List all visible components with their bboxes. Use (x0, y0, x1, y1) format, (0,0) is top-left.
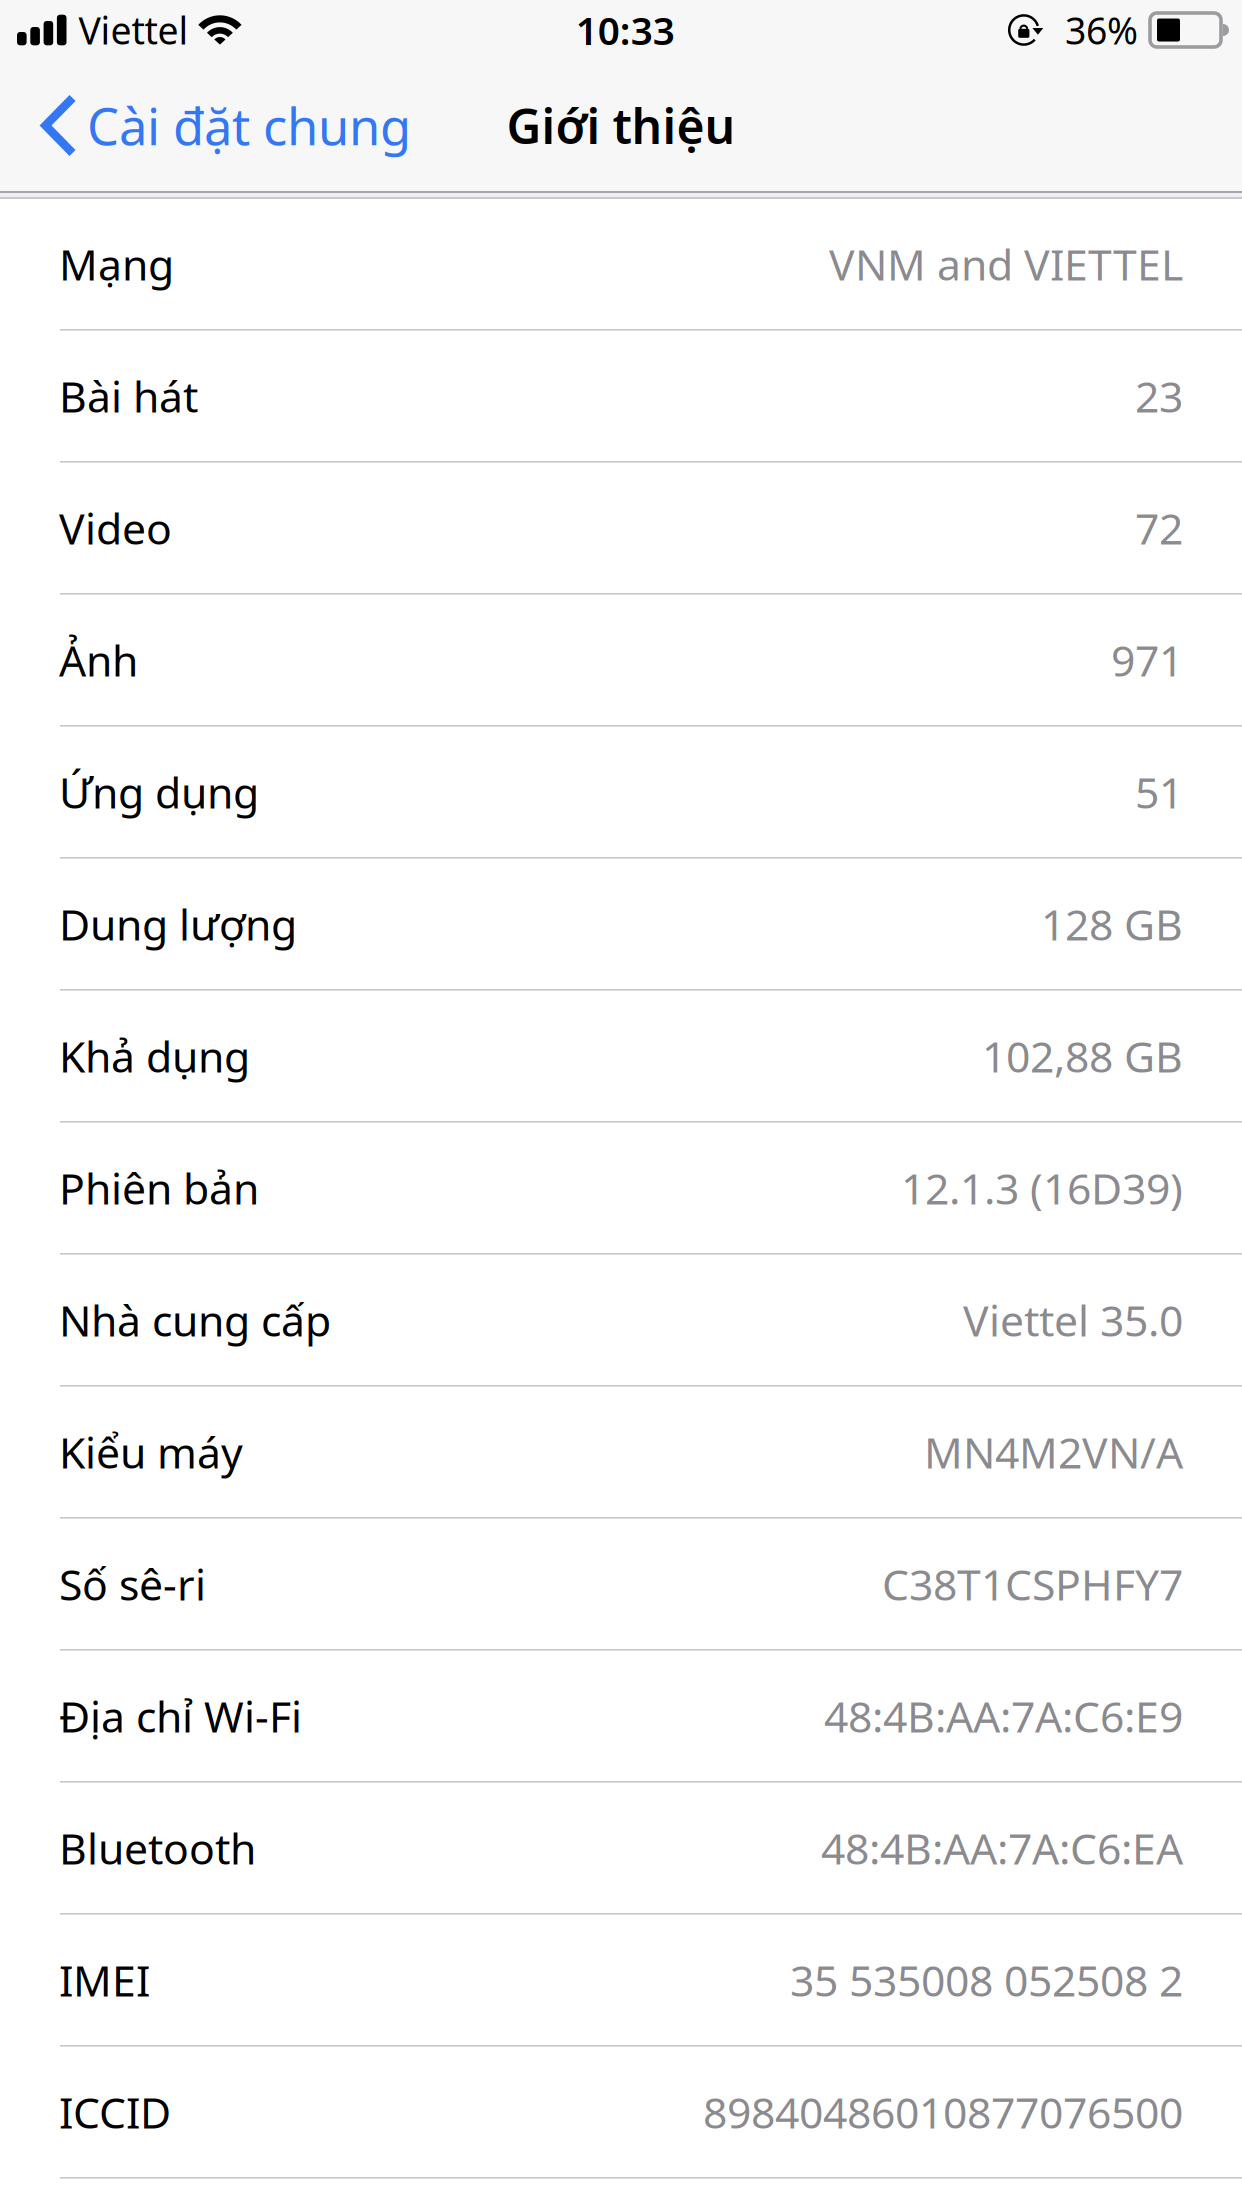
staticText: 971 (1111, 632, 1183, 688)
staticText: Cài đặt chung (87, 92, 411, 159)
staticText: 102,88 GB (982, 1028, 1183, 1084)
staticText: 10:33 (576, 4, 675, 56)
staticText: Bluetooth (59, 1820, 256, 1876)
staticText: Khả dụng (59, 1028, 250, 1084)
staticText: Phiên bản (59, 1160, 259, 1216)
button[interactable]: ICCID (0, 2047, 1242, 2179)
button[interactable]: Kiểu máy (0, 1387, 1242, 1519)
staticText: 12.1.3 (16D39) (901, 1160, 1183, 1216)
button[interactable]: Bluetooth (0, 1783, 1242, 1915)
staticText: 128 GB (1041, 896, 1183, 952)
button[interactable]: Mạng (0, 199, 1242, 331)
button[interactable]: Dung lượng (0, 859, 1242, 991)
staticText: IMEI (59, 1952, 150, 2008)
staticText: Video (59, 500, 172, 556)
staticText: 72 (1135, 500, 1183, 556)
staticText: Dung lượng (59, 896, 297, 952)
staticText: VNM and VIETTEL (829, 236, 1183, 292)
button[interactable]: Khả dụng (0, 991, 1242, 1123)
staticText: Mạng (59, 236, 174, 292)
staticText: 48:4B:AA:7A:C6:EA (821, 1820, 1183, 1876)
staticText: C38T1CSPHFY7 (882, 1556, 1183, 1612)
button[interactable]: Địa chỉ Wi-Fi (0, 1651, 1242, 1783)
staticText: Giới thiệu (506, 94, 735, 157)
staticText: 35 535008 052508 2 (790, 1952, 1183, 2008)
button[interactable]: Ảnh (0, 595, 1242, 727)
button[interactable]: Video (0, 463, 1242, 595)
staticText: 36% (1065, 5, 1138, 55)
button[interactable]: Cài đặt chung (0, 61, 435, 189)
staticText: Nhà cung cấp (59, 1292, 331, 1348)
staticText: 51 (1135, 764, 1183, 820)
staticText: 48:4B:AA:7A:C6:E9 (824, 1688, 1183, 1744)
staticText: Bài hát (59, 368, 198, 424)
staticText: Kiểu máy (59, 1424, 243, 1480)
staticText: Viettel 35.0 (963, 1292, 1183, 1348)
button[interactable]: Nhà cung cấp (0, 1255, 1242, 1387)
button[interactable]: Ứng dụng (0, 727, 1242, 859)
button[interactable]: Số sê-ri (0, 1519, 1242, 1651)
button[interactable]: IMEI (0, 1915, 1242, 2047)
button[interactable]: Phiên bản (0, 1123, 1242, 1255)
staticText: MN4M2VN/A (924, 1424, 1183, 1480)
button[interactable]: Bài hát (0, 331, 1242, 463)
staticText: Số sê-ri (59, 1556, 206, 1612)
staticText: 89840486010877076500 (703, 2084, 1183, 2140)
staticText: Ảnh (59, 632, 138, 688)
staticText: 23 (1135, 368, 1183, 424)
staticText: ICCID (59, 2084, 171, 2140)
staticText: Ứng dụng (59, 764, 259, 820)
staticText: Địa chỉ Wi-Fi (59, 1688, 302, 1744)
staticText: Viettel (78, 5, 188, 55)
